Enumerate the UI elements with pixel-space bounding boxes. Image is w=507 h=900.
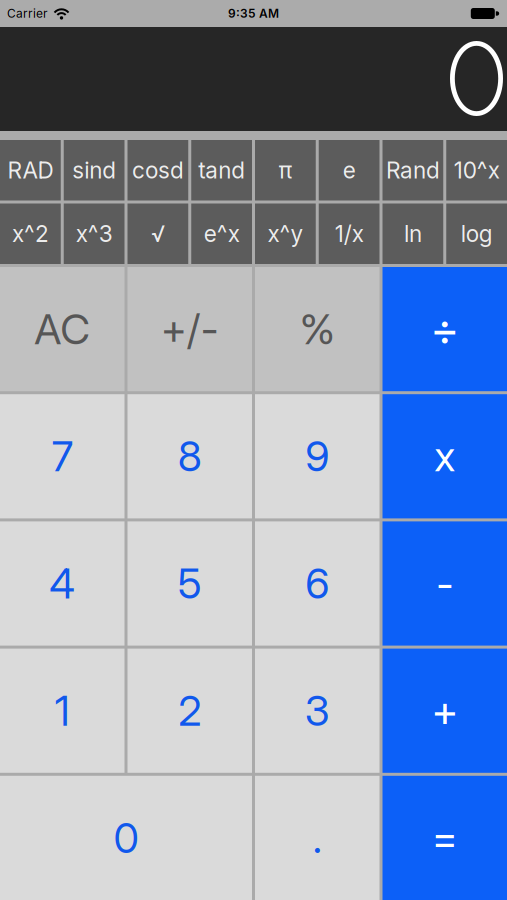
staticText: = xyxy=(432,813,458,862)
staticText: log xyxy=(461,220,493,247)
button[interactable]: e xyxy=(319,140,380,200)
staticText: Rand xyxy=(386,157,440,184)
staticText: x^3 xyxy=(76,220,113,247)
staticText: AC xyxy=(34,305,90,353)
button[interactable]: . xyxy=(255,776,379,900)
staticText: ln xyxy=(404,220,422,247)
button[interactable]: cosd xyxy=(127,140,188,200)
staticText: 9:35 AM xyxy=(228,6,279,21)
button[interactable]: 6 xyxy=(255,521,379,646)
staticText: RAD xyxy=(7,157,53,184)
staticText: π xyxy=(278,157,292,184)
button[interactable]: Rand xyxy=(382,140,443,200)
button[interactable]: x^3 xyxy=(64,203,125,264)
staticText: 8 xyxy=(178,432,202,481)
button[interactable]: ln xyxy=(382,203,443,264)
button[interactable]: ÷ xyxy=(382,267,507,391)
button[interactable]: 0 xyxy=(0,776,252,900)
button[interactable]: 10^x xyxy=(446,140,507,200)
staticText: x xyxy=(434,432,455,481)
staticText: . xyxy=(313,813,322,862)
button[interactable]: - xyxy=(382,521,507,646)
button[interactable]: tand xyxy=(191,140,252,200)
staticText: Carrier xyxy=(7,6,48,21)
button[interactable]: 7 xyxy=(0,394,124,518)
button[interactable]: 2 xyxy=(127,649,252,773)
staticText: 4 xyxy=(49,559,75,608)
button[interactable]: 1/x xyxy=(319,203,380,264)
button[interactable]: 8 xyxy=(127,394,252,518)
staticText: sind xyxy=(72,157,116,184)
staticText: 2 xyxy=(178,686,201,735)
staticText: 0 xyxy=(113,813,138,862)
staticText: 1 xyxy=(55,686,70,735)
button[interactable]: x^2 xyxy=(0,203,61,264)
button[interactable]: log xyxy=(446,203,507,264)
button[interactable]: 1 xyxy=(0,649,124,773)
staticText: + xyxy=(431,685,459,736)
staticText: 1/x xyxy=(335,220,364,247)
staticText: - xyxy=(436,560,453,607)
button[interactable]: e^x xyxy=(191,203,252,264)
staticText: e^x xyxy=(204,220,240,247)
staticText: x^2 xyxy=(12,220,49,247)
button[interactable]: + xyxy=(382,649,507,773)
staticText: +/- xyxy=(161,305,219,353)
button[interactable]: π xyxy=(255,140,316,200)
button[interactable]: 5 xyxy=(127,521,252,646)
button[interactable]: x^y xyxy=(255,203,316,264)
staticText: 3 xyxy=(305,686,330,735)
button[interactable]: sind xyxy=(64,140,125,200)
staticText: cosd xyxy=(132,157,184,184)
button[interactable]: √ xyxy=(127,203,188,264)
staticText: 9 xyxy=(305,432,329,481)
button[interactable]: 9 xyxy=(255,394,379,518)
button[interactable]: % xyxy=(255,267,379,391)
button[interactable]: +/- xyxy=(127,267,252,391)
button[interactable]: RAD xyxy=(0,140,61,200)
staticText: 7 xyxy=(52,432,73,481)
staticText: 6 xyxy=(305,559,329,608)
staticText: 5 xyxy=(178,559,202,608)
button[interactable]: 4 xyxy=(0,521,124,646)
button[interactable]: AC xyxy=(0,267,124,391)
button[interactable]: x xyxy=(382,394,507,518)
staticText: % xyxy=(300,305,335,353)
staticText: ÷ xyxy=(430,302,460,356)
staticText: √ xyxy=(151,220,165,247)
button[interactable]: 3 xyxy=(255,649,379,773)
staticText: e xyxy=(343,157,356,184)
staticText: x^y xyxy=(267,220,303,247)
staticText: 10^x xyxy=(454,157,500,184)
staticText: tand xyxy=(198,157,245,184)
button[interactable]: = xyxy=(382,776,507,900)
